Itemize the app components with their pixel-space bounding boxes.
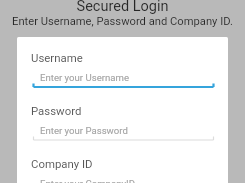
button[interactable]: Company ID (17, 157, 228, 183)
staticText: Enter your CompanyID (40, 178, 135, 183)
button[interactable]: Password (17, 104, 228, 143)
staticText: Enter your Password (40, 125, 128, 136)
staticText: Secured Login (0, 0, 245, 15)
staticText: Password (31, 104, 82, 117)
button[interactable]: Username (17, 51, 228, 90)
staticText: Enter your Username (40, 72, 129, 83)
staticText: Username (31, 51, 83, 64)
staticText: Enter Username, Password and Company ID. (0, 15, 245, 28)
staticText: Company ID (31, 157, 93, 170)
